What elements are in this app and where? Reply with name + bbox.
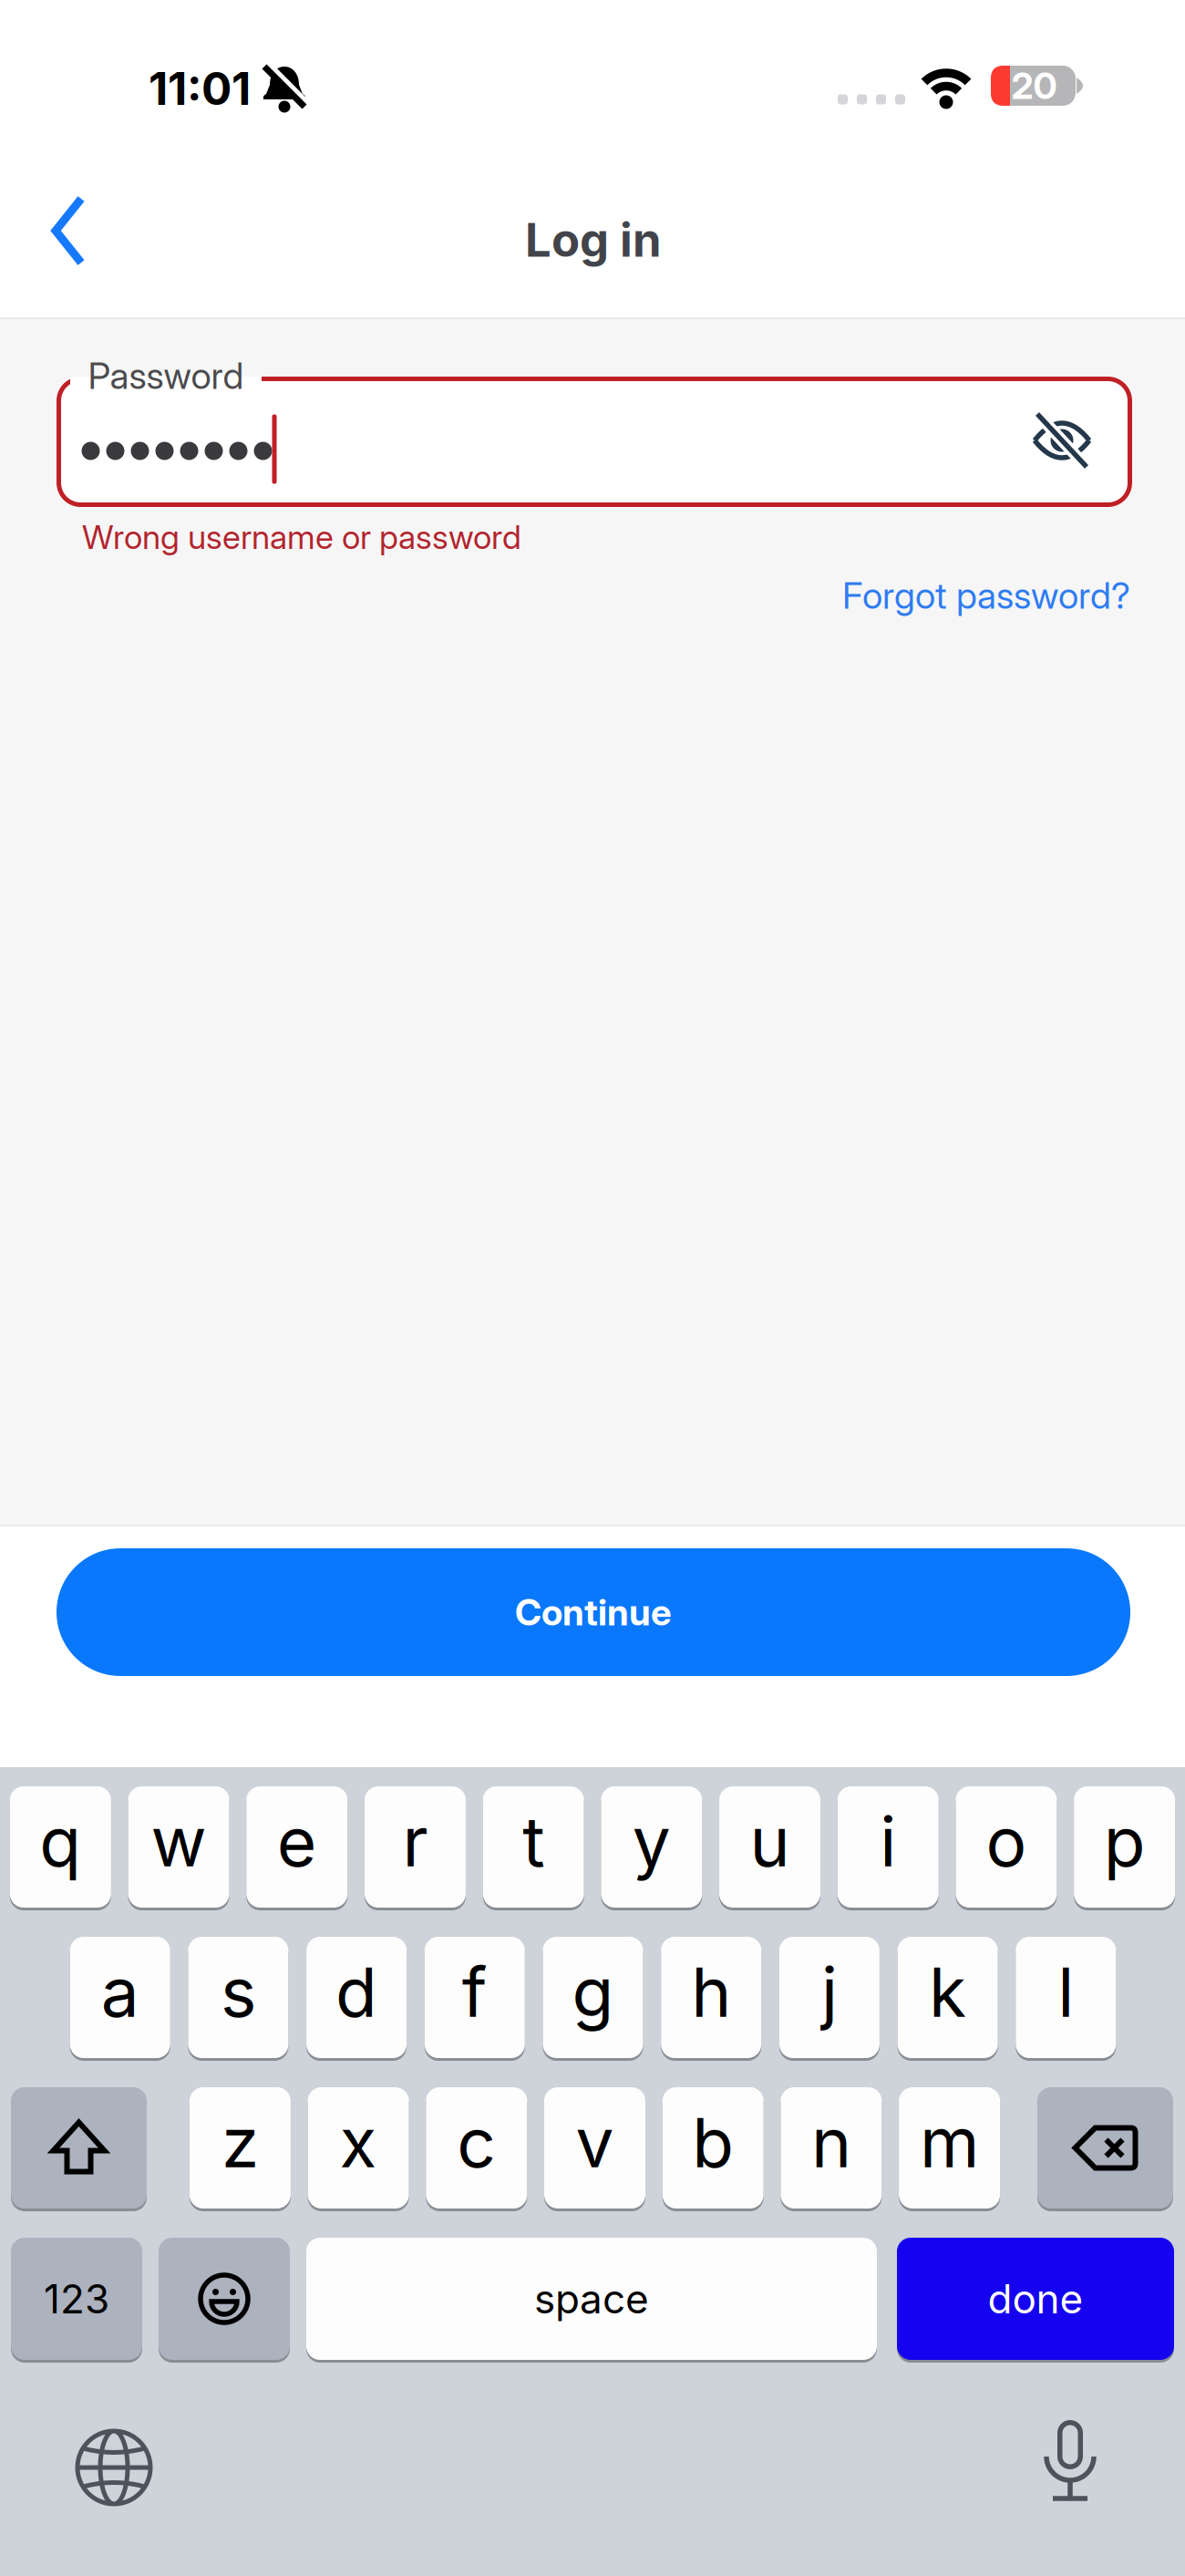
button[interactable]: y — [601, 1786, 702, 1908]
staticText: i — [880, 1801, 896, 1882]
button[interactable]: t — [483, 1786, 584, 1908]
button[interactable]: x — [308, 2087, 409, 2209]
button[interactable]: 123 — [11, 2238, 142, 2360]
staticText: space — [534, 2275, 649, 2322]
button[interactable]: v — [544, 2087, 645, 2209]
staticText: Continue — [515, 1591, 672, 1634]
button[interactable]: u — [719, 1786, 820, 1908]
staticText: p — [1104, 1801, 1146, 1882]
staticText: n — [811, 2102, 851, 2183]
button[interactable]: k — [898, 1937, 998, 2058]
button[interactable]: e — [246, 1786, 347, 1908]
button[interactable]: done — [897, 2238, 1174, 2360]
button[interactable]: i — [838, 1786, 939, 1908]
staticText: l — [1058, 1952, 1074, 2032]
staticText: s — [221, 1952, 256, 2032]
staticText: j — [821, 1952, 838, 2032]
button[interactable]: w — [128, 1786, 229, 1908]
staticText: y — [633, 1801, 671, 1882]
staticText: g — [572, 1952, 614, 2032]
staticText: Log in — [525, 213, 662, 267]
staticText: 123 — [44, 2275, 109, 2322]
staticText: k — [929, 1952, 966, 2032]
staticText: d — [336, 1952, 377, 2032]
button[interactable] — [1029, 408, 1095, 473]
staticText: a — [101, 1952, 139, 2032]
staticText: b — [692, 2102, 734, 2183]
staticText: w — [151, 1801, 207, 1882]
button[interactable]: q — [10, 1786, 111, 1908]
staticText: h — [691, 1952, 731, 2032]
button[interactable] — [159, 2238, 290, 2360]
staticText: r — [402, 1801, 428, 1882]
staticText: z — [221, 2102, 259, 2183]
button[interactable]: a — [70, 1937, 170, 2058]
button[interactable]: o — [956, 1786, 1057, 1908]
button[interactable] — [1029, 2419, 1111, 2507]
staticText: q — [40, 1801, 81, 1882]
button[interactable] — [35, 178, 102, 284]
button[interactable]: space — [306, 2238, 877, 2360]
button[interactable]: g — [543, 1937, 643, 2058]
staticText: c — [457, 2102, 496, 2183]
staticText: done — [988, 2275, 1083, 2322]
staticText: Forgot password? — [842, 574, 1130, 617]
button[interactable]: h — [661, 1937, 761, 2058]
staticText: 20 — [1011, 64, 1057, 107]
button[interactable]: m — [899, 2087, 1000, 2209]
staticText: Password — [88, 354, 244, 397]
staticText: 11:01 — [149, 62, 251, 115]
staticText: Wrong username or password — [82, 518, 521, 557]
button[interactable] — [11, 2087, 147, 2209]
staticText: v — [576, 2102, 614, 2183]
button[interactable]: r — [365, 1786, 466, 1908]
button[interactable] — [72, 2426, 156, 2509]
staticText: t — [522, 1801, 544, 1882]
staticText: f — [462, 1952, 487, 2032]
button[interactable]: f — [425, 1937, 525, 2058]
staticText: x — [340, 2102, 377, 2183]
button[interactable]: p — [1074, 1786, 1175, 1908]
button[interactable]: Continue — [57, 1548, 1130, 1676]
staticText: e — [277, 1801, 317, 1882]
button[interactable]: Forgot password? — [842, 574, 1130, 617]
staticText: u — [750, 1801, 790, 1882]
button[interactable]: b — [662, 2087, 764, 2209]
button[interactable]: s — [188, 1937, 288, 2058]
button[interactable]: c — [426, 2087, 527, 2209]
button[interactable] — [1037, 2087, 1173, 2209]
staticText: m — [920, 2102, 979, 2183]
button[interactable]: d — [306, 1937, 407, 2058]
button[interactable]: j — [779, 1937, 880, 2058]
button[interactable]: l — [1016, 1937, 1116, 2058]
button[interactable]: n — [781, 2087, 882, 2209]
staticText: o — [986, 1801, 1027, 1882]
button[interactable]: z — [190, 2087, 291, 2209]
button[interactable] — [57, 377, 1132, 507]
